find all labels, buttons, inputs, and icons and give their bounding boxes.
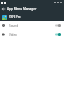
button[interactable]: Video [0,30,64,39]
button[interactable]: Sound [0,21,64,30]
button[interactable]: Back [0,5,7,13]
staticText: FXFE Pro [9,15,21,19]
button[interactable]: Toggle off [55,23,61,28]
button[interactable]: FXFE Pro [2,13,62,21]
button[interactable]: Toggle on [55,32,61,37]
staticText: Video [9,33,17,37]
staticText: App Menu Manager [7,7,37,11]
staticText: Sound [9,24,19,28]
